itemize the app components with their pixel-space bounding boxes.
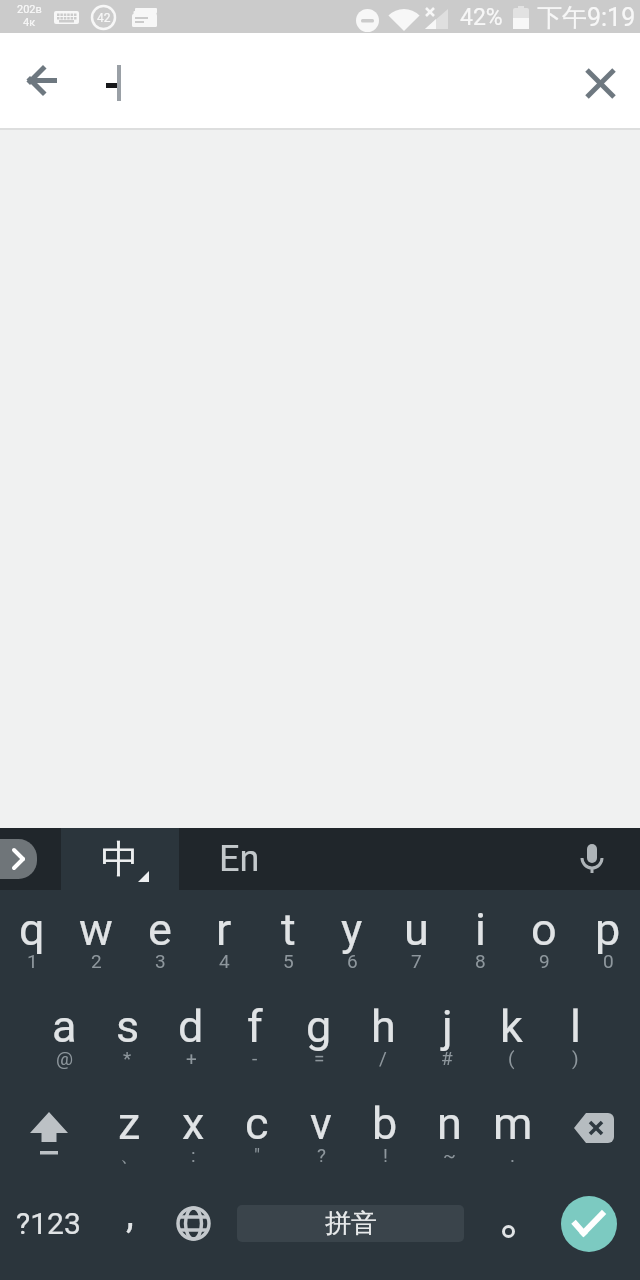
staticText: d [178, 1000, 204, 1053]
button[interactable]: En [179, 828, 299, 890]
staticText: i [475, 903, 486, 956]
staticText: o [531, 903, 557, 956]
staticText: 3 [155, 950, 166, 972]
button[interactable]: b [353, 1084, 417, 1182]
staticText: q [19, 903, 45, 956]
staticText: z [118, 1097, 141, 1150]
staticText: 4 [219, 950, 230, 972]
button[interactable]: u [384, 890, 448, 987]
button[interactable]: d [159, 987, 223, 1084]
button[interactable] [566, 833, 618, 885]
staticText: 0 [603, 950, 614, 972]
staticText: ? [317, 1144, 326, 1166]
staticText: @ [56, 1047, 74, 1069]
staticText: h [371, 1000, 396, 1053]
staticText: r [216, 903, 232, 956]
staticText: 5 [283, 950, 294, 972]
button[interactable]: r [192, 890, 256, 987]
button[interactable] [480, 1182, 540, 1264]
button[interactable]: l [543, 987, 607, 1084]
button[interactable] [0, 1084, 97, 1182]
button[interactable]: h [351, 987, 415, 1084]
staticText: 8 [475, 950, 486, 972]
staticText: " [254, 1144, 261, 1166]
staticText: 42% [460, 4, 503, 31]
staticText: / [379, 1047, 387, 1069]
button[interactable]: f [223, 987, 287, 1084]
staticText: ) [572, 1047, 579, 1069]
staticText: j [442, 1000, 453, 1053]
staticText: + [186, 1047, 197, 1069]
button[interactable]: j [415, 987, 479, 1084]
button[interactable]: z [97, 1084, 161, 1182]
staticText: ~ [443, 1144, 456, 1166]
staticText: ( [508, 1047, 515, 1069]
button[interactable]: o [512, 890, 576, 987]
staticText: u [404, 903, 429, 956]
staticText: g [306, 1000, 332, 1053]
staticText: 202в [17, 3, 42, 16]
button[interactable] [545, 1084, 640, 1182]
staticText: En [219, 838, 260, 880]
button[interactable]: t [256, 890, 320, 987]
staticText: # [441, 1047, 453, 1069]
button[interactable]: x [161, 1084, 225, 1182]
button[interactable]: e [128, 890, 192, 987]
button[interactable] [20, 59, 68, 107]
staticText: ?123 [16, 1206, 81, 1241]
staticText: f [247, 1000, 263, 1053]
button[interactable]: a [33, 987, 96, 1084]
button[interactable]: y [320, 890, 384, 987]
button[interactable]: n [417, 1084, 481, 1182]
staticText: - [252, 1047, 258, 1069]
staticText: 7 [411, 950, 422, 972]
staticText: b [372, 1097, 398, 1150]
staticText: 6 [347, 950, 358, 972]
staticText: : [191, 1144, 196, 1166]
staticText: y [341, 903, 363, 956]
button[interactable]: v [289, 1084, 353, 1182]
staticText: , [126, 1190, 134, 1237]
button[interactable]: 中 [61, 828, 179, 890]
staticText: 2 [91, 950, 102, 972]
staticText: m [493, 1097, 533, 1150]
button[interactable]: s [96, 987, 159, 1084]
button[interactable]: i [448, 890, 512, 987]
staticText: a [52, 1000, 77, 1053]
staticText: k [500, 1000, 523, 1053]
staticText: v [310, 1097, 332, 1150]
staticText: e [148, 903, 172, 956]
button[interactable] [576, 59, 624, 107]
button[interactable]: ?123 [0, 1182, 97, 1264]
staticText: w [79, 903, 113, 956]
staticText: c [245, 1097, 269, 1150]
staticText: p [595, 903, 621, 956]
button[interactable]: , [97, 1182, 163, 1264]
staticText: n [437, 1097, 462, 1150]
button[interactable] [0, 839, 37, 879]
button[interactable]: q [0, 890, 64, 987]
button[interactable]: c [225, 1084, 289, 1182]
staticText: ! [383, 1144, 388, 1166]
staticText: x [182, 1097, 205, 1150]
staticText: 1 [27, 950, 38, 972]
staticText: 中 [101, 835, 139, 883]
button[interactable] [561, 1196, 617, 1252]
staticText: 4к [23, 16, 36, 29]
button[interactable]: 拼音 [237, 1205, 464, 1242]
button[interactable]: p [576, 890, 640, 987]
staticText: 、 [120, 1144, 139, 1168]
button[interactable]: w [64, 890, 128, 987]
button[interactable]: k [479, 987, 543, 1084]
staticText: 拼音 [325, 1207, 377, 1240]
staticText: t [281, 903, 296, 956]
button[interactable]: g [287, 987, 351, 1084]
staticText: * [123, 1047, 132, 1069]
button[interactable]: m [481, 1084, 545, 1182]
staticText: . [510, 1144, 516, 1166]
button[interactable] [163, 1182, 223, 1264]
staticText: l [570, 1000, 581, 1053]
staticText: = [314, 1047, 325, 1069]
staticText: 42 [97, 11, 111, 25]
staticText: 下午9:19 [537, 2, 636, 33]
